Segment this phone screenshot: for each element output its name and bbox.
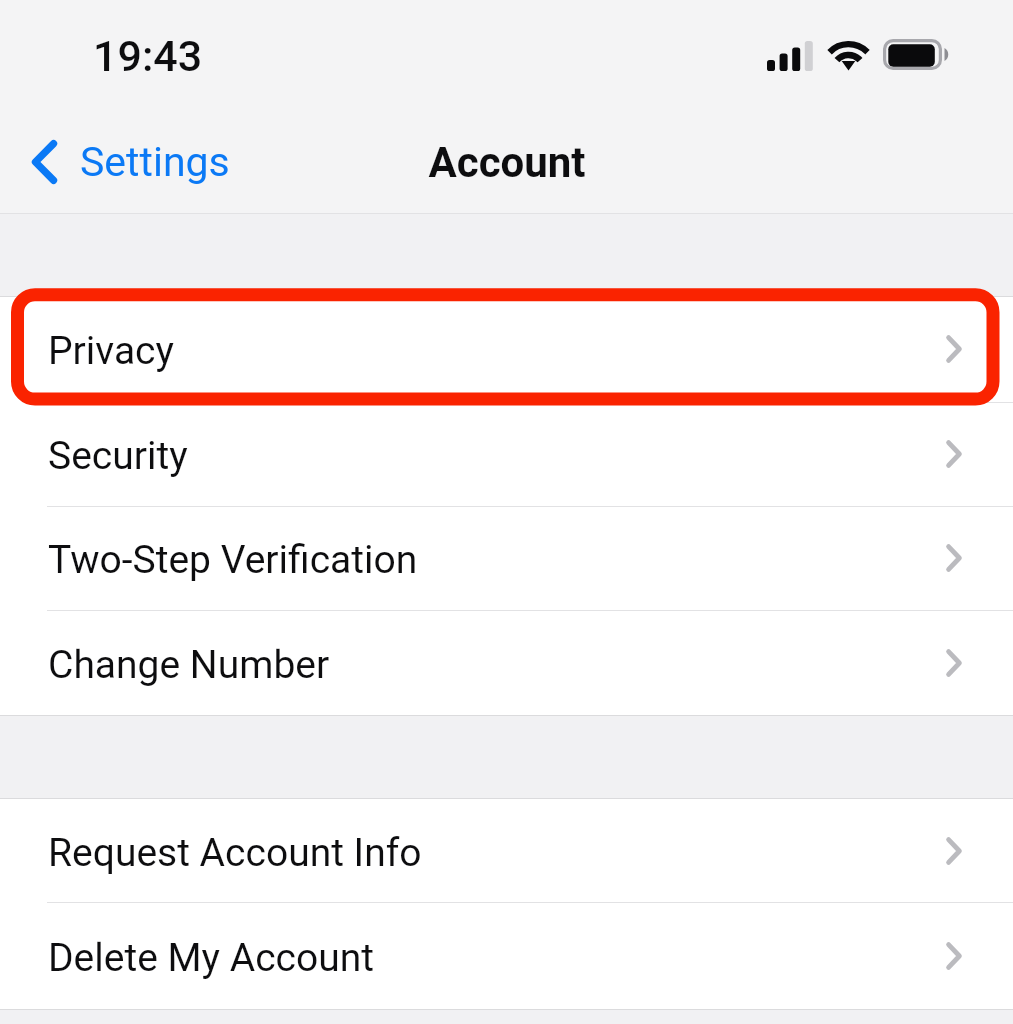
button[interactable]: Security xyxy=(0,402,1013,506)
staticText: Delete My Account xyxy=(48,935,375,981)
button[interactable]: Privacy xyxy=(0,296,1013,402)
staticText: Account xyxy=(428,138,586,187)
staticText: Security xyxy=(48,433,188,479)
button[interactable]: Change Number xyxy=(0,610,1013,715)
staticText: Privacy xyxy=(48,328,174,374)
button[interactable]: Request Account Info xyxy=(0,799,1013,902)
staticText: 19:43 xyxy=(93,31,203,81)
button[interactable]: Back to Settings xyxy=(26,120,230,204)
staticText: Change Number xyxy=(48,642,330,688)
button[interactable]: Delete My Account xyxy=(0,902,1013,1009)
staticText: Request Account Info xyxy=(48,830,422,876)
staticText: Two-Step Verification xyxy=(48,537,418,583)
staticText: Settings xyxy=(80,138,230,186)
button[interactable]: Two-Step Verification xyxy=(0,506,1013,610)
